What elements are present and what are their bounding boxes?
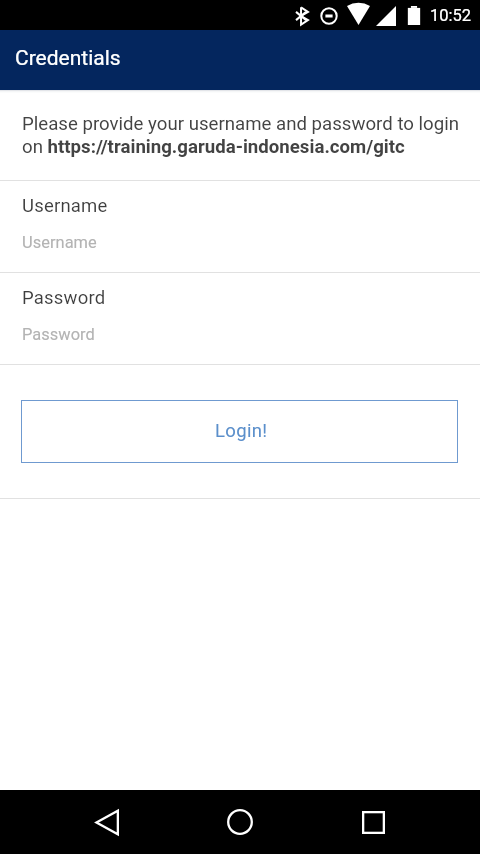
staticText: Password [22,287,106,309]
staticText: Username [22,233,97,252]
button[interactable]: Home [208,790,272,854]
button[interactable] [0,273,480,364]
button[interactable]: Login! [21,400,458,463]
staticText: Please provide your username and passwor… [22,112,460,158]
staticText: Username [22,195,108,217]
staticText: Login! [215,420,268,442]
button[interactable]: Back [75,790,139,854]
staticText: Credentials [15,46,121,71]
button[interactable] [0,181,480,272]
button[interactable]: Recent apps [341,790,405,854]
staticText: Password [22,325,95,344]
staticText: 10:52 [430,6,472,25]
